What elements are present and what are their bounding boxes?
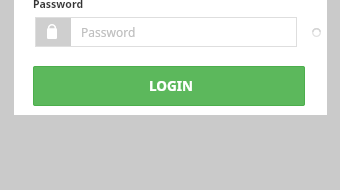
button[interactable]: Password (35, 17, 297, 47)
button[interactable]: LOGIN (33, 66, 305, 106)
staticText: LOGIN (149, 77, 193, 95)
staticText: Password (33, 0, 84, 11)
staticText: Password (81, 24, 136, 40)
button[interactable]: Help (306, 22, 326, 42)
